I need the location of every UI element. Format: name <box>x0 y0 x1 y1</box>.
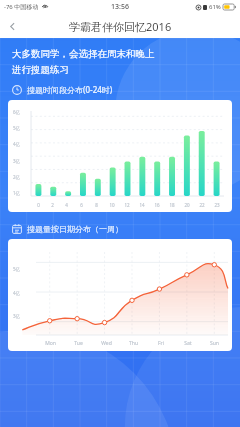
staticText: 10 <box>109 202 115 208</box>
staticText: 4亿 <box>13 141 21 147</box>
button[interactable]: 搜题量按日期分布（一周） <box>12 224 228 234</box>
staticText: 14 <box>139 202 145 208</box>
staticText: 3亿 <box>13 313 21 319</box>
staticText: 0 <box>37 202 40 208</box>
staticText: Thu <box>129 340 138 347</box>
staticText: 12 <box>124 202 130 208</box>
staticText: 1亿 <box>13 190 21 196</box>
staticText: 6亿 <box>13 109 21 115</box>
staticText: 3亿 <box>13 158 21 164</box>
button[interactable]: 搜题时间段分布(0-24时) <box>12 84 228 95</box>
staticText: Sun <box>210 340 219 347</box>
staticText: 2亿 <box>13 174 21 180</box>
staticText: 学霸君伴你回忆2016 <box>69 19 172 34</box>
staticText: 16 <box>154 202 160 208</box>
staticText: 22 <box>199 202 205 208</box>
button[interactable]: Back <box>0 14 24 38</box>
staticText: Fri <box>158 340 164 347</box>
staticText: 4 <box>65 202 68 208</box>
staticText: Mon <box>45 340 56 347</box>
staticText: 5亿 <box>13 125 21 131</box>
staticText: Tue <box>74 340 83 347</box>
staticText: 23 <box>214 202 220 208</box>
button[interactable]: 5亿 <box>8 239 232 351</box>
staticText: 进行搜题练习 <box>12 64 69 76</box>
staticText: 4亿 <box>13 290 21 296</box>
staticText: 61% <box>209 3 221 11</box>
button[interactable]: 6亿 <box>8 100 232 212</box>
staticText: 8 <box>95 202 98 208</box>
staticText: 搜题量按日期分布（一周） <box>27 224 123 234</box>
staticText: 18 <box>169 202 175 208</box>
staticText: 20 <box>184 202 190 208</box>
staticText: 2 <box>51 202 54 208</box>
staticText: 13:56 <box>111 2 129 12</box>
staticText: 6 <box>80 202 83 208</box>
staticText: 5亿 <box>13 266 21 272</box>
staticText: -76 中国移动 <box>4 3 39 11</box>
staticText: 搜题时间段分布(0-24时) <box>27 84 113 95</box>
staticText: 大多数同学，会选择在周末和晚上 <box>12 48 155 60</box>
staticText: Sat <box>184 340 192 347</box>
staticText: Wed <box>101 340 112 347</box>
